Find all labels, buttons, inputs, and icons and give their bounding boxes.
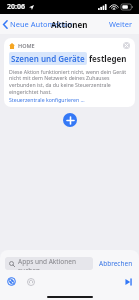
- button[interactable]: Abbrechen: [98, 256, 134, 271]
- staticText: Szenen und Geräte: [11, 53, 85, 64]
- button[interactable]: Schließen: [123, 42, 130, 49]
- button[interactable]: Szenen und Geräte: [9, 52, 87, 65]
- button[interactable]: Neue Automation: [0, 17, 77, 31]
- staticText: Aktionen: [51, 19, 88, 30]
- button[interactable]: Ausführen: [122, 276, 133, 287]
- staticText: festlegen: [89, 53, 127, 64]
- button[interactable]: Apps: [25, 276, 36, 287]
- staticText: Apps und Aktionen suchen: [18, 257, 89, 270]
- button[interactable]: Aktion hinzufügen: [63, 113, 77, 127]
- staticText: Abbrechen: [99, 259, 133, 268]
- staticText: Neue Automation: [10, 19, 73, 29]
- staticText: Diese Aktion funktioniert nicht, wenn de…: [9, 68, 130, 96]
- staticText: Weiter: [109, 19, 133, 29]
- button[interactable]: Weiter: [103, 16, 139, 32]
- button[interactable]: Apps und Aktionen suchen: [5, 257, 93, 270]
- button[interactable]: Kurzbefehle: [6, 276, 17, 287]
- button[interactable]: Steuerzentrale konfigurieren ...: [9, 96, 85, 103]
- button[interactable]: HOME: [4, 38, 135, 107]
- staticText: 20:06: [7, 2, 25, 12]
- staticText: HOME: [18, 42, 35, 49]
